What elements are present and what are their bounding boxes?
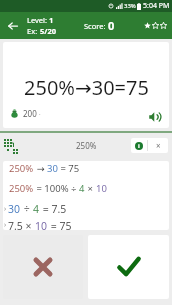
staticText: 30 — [47, 162, 58, 175]
staticText: → — [34, 162, 47, 175]
button[interactable]: Play sound — [147, 109, 163, 125]
staticText: Level: — [27, 15, 49, 25]
staticText: · — [39, 110, 41, 118]
staticText: Score: — [84, 21, 108, 31]
button[interactable]: Info — [131, 138, 147, 153]
staticText: = 100% ÷ — [34, 182, 79, 195]
staticText: 250%→30=75 — [24, 74, 149, 101]
staticText: 33% — [124, 2, 136, 10]
staticText: 5:04 PM — [143, 1, 170, 11]
staticText: 5/20 — [40, 26, 56, 36]
staticText: × — [156, 140, 161, 151]
staticText: 250% — [76, 140, 97, 151]
staticText: 10 — [35, 219, 48, 230]
button[interactable]: Keypad — [1, 136, 19, 154]
staticText: = 75 — [48, 219, 72, 230]
staticText: ÷ — [21, 202, 33, 216]
staticText: 30 — [8, 202, 21, 216]
staticText: = 7.5 — [40, 202, 67, 216]
staticText: Ex: — [27, 26, 40, 36]
staticText: 0 — [108, 18, 115, 33]
staticText: 4 — [79, 182, 85, 195]
staticText: = 75 — [58, 162, 80, 175]
staticText: 250% — [9, 162, 34, 175]
button[interactable]: Back — [5, 18, 21, 34]
staticText: 10 — [96, 182, 107, 195]
staticText: × — [85, 182, 96, 195]
staticText: › — [4, 204, 8, 214]
staticText: 4 — [33, 202, 40, 216]
staticText: i — [138, 142, 140, 150]
staticText: 1 — [49, 15, 54, 25]
staticText: 200 — [23, 108, 37, 119]
button[interactable]: Correct — [88, 235, 169, 299]
button[interactable]: Clear — [148, 138, 168, 153]
staticText: 250% — [9, 182, 34, 195]
staticText: 7.5 × — [8, 219, 35, 230]
staticText: › — [4, 220, 8, 230]
button[interactable]: Wrong — [3, 235, 83, 299]
